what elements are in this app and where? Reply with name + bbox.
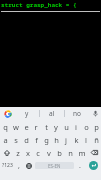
- button[interactable]: Enter: [85, 159, 101, 172]
- button[interactable]: z: [13, 146, 23, 159]
- button[interactable]: q: [0, 120, 11, 133]
- staticText: ?123: [2, 162, 13, 169]
- button[interactable]: d: [21, 133, 31, 146]
- button[interactable]: a: [0, 133, 11, 146]
- button[interactable]: ?123: [0, 159, 14, 172]
- button[interactable]: y: [51, 120, 61, 133]
- staticText: struct grasp_hack = {: [1, 1, 77, 9]
- staticText: s: [14, 135, 18, 145]
- staticText: m: [78, 148, 86, 158]
- staticText: no: [73, 109, 81, 118]
- staticText: r: [34, 122, 38, 132]
- button[interactable]: t: [41, 120, 51, 133]
- button[interactable]: m: [76, 146, 87, 159]
- button[interactable]: s: [11, 133, 21, 146]
- button[interactable]: b: [54, 146, 65, 159]
- button[interactable]: ñ: [91, 133, 101, 146]
- button[interactable]: v: [43, 146, 54, 159]
- button[interactable]: p: [91, 120, 101, 133]
- button[interactable]: r: [31, 120, 41, 133]
- staticText: al: [49, 109, 55, 118]
- staticText: l: [85, 135, 87, 145]
- button[interactable]: al: [40, 107, 64, 120]
- staticText: j: [65, 135, 67, 145]
- staticText: f: [35, 135, 38, 145]
- staticText: t: [45, 122, 48, 132]
- button[interactable]: ES-EN: [35, 162, 74, 169]
- button[interactable]: o: [81, 120, 91, 133]
- button[interactable]: h: [51, 133, 61, 146]
- button[interactable]: i: [71, 120, 81, 133]
- button[interactable]: k: [71, 133, 81, 146]
- staticText: o: [84, 122, 89, 132]
- staticText: p: [94, 122, 99, 132]
- staticText: k: [74, 135, 79, 145]
- staticText: ñ: [94, 135, 99, 145]
- button[interactable]: n: [65, 146, 76, 159]
- staticText: u: [64, 122, 69, 132]
- staticText: w: [13, 122, 19, 132]
- button[interactable]: c: [33, 146, 43, 159]
- staticText: ,: [18, 161, 20, 171]
- button[interactable]: x: [23, 146, 33, 159]
- staticText: z: [16, 148, 20, 158]
- button[interactable]: Voice input: [89, 107, 101, 120]
- button[interactable]: e: [21, 120, 31, 133]
- staticText: a: [3, 135, 8, 145]
- button[interactable]: l: [81, 133, 91, 146]
- staticText: g: [44, 135, 49, 145]
- staticText: i: [75, 122, 77, 132]
- button[interactable]: Shift: [0, 146, 13, 159]
- staticText: y: [54, 122, 58, 132]
- staticText: ES-EN: [48, 163, 61, 169]
- staticText: v: [47, 148, 51, 158]
- button[interactable]: y: [15, 107, 39, 120]
- staticText: y: [25, 109, 29, 118]
- button[interactable]: j: [61, 133, 71, 146]
- button[interactable]: ,: [14, 159, 24, 172]
- staticText: n: [68, 148, 73, 158]
- button[interactable]: Change language: [24, 159, 34, 172]
- staticText: x: [26, 148, 30, 158]
- staticText: h: [54, 135, 59, 145]
- button[interactable]: w: [11, 120, 21, 133]
- button[interactable]: f: [31, 133, 41, 146]
- button[interactable]: no: [65, 107, 89, 120]
- staticText: b: [57, 148, 62, 158]
- button[interactable]: .: [75, 159, 85, 172]
- button[interactable]: Google: [0, 107, 15, 120]
- staticText: e: [24, 122, 29, 132]
- button[interactable]: Backspace: [87, 146, 101, 159]
- staticText: d: [24, 135, 29, 145]
- button[interactable]: g: [41, 133, 51, 146]
- staticText: .: [79, 161, 81, 171]
- staticText: q: [3, 122, 8, 132]
- staticText: c: [36, 148, 40, 158]
- button[interactable]: u: [61, 120, 71, 133]
